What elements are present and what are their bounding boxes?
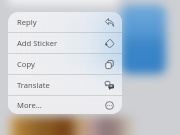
- button[interactable]: Reply: [8, 12, 122, 32]
- button[interactable]: Translate: [8, 75, 122, 95]
- button[interactable]: Add Sticker: [8, 33, 122, 53]
- staticText: Reply: [17, 17, 37, 27]
- button[interactable]: More...: [8, 96, 122, 114]
- staticText: More...: [17, 100, 42, 110]
- button[interactable]: Copy: [8, 54, 122, 74]
- staticText: Add Sticker: [17, 38, 58, 48]
- staticText: Translate: [17, 80, 50, 90]
- staticText: Copy: [17, 59, 35, 69]
